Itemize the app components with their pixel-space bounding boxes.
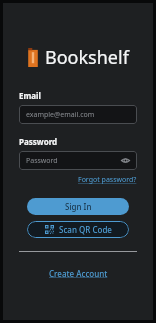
staticText: Password [26,156,58,166]
staticText: Password [19,136,58,147]
button[interactable]: Sign In [27,198,129,215]
staticText: example@email.com [26,110,95,120]
button[interactable]: example@email.com [19,105,137,124]
button[interactable]: Show password [121,156,130,165]
staticText: Sign In [65,201,92,212]
staticText: Forgot password? [78,175,137,185]
button[interactable]: Forgot password? [78,175,137,185]
staticText: Create Account [49,268,108,279]
button[interactable]: Create Account [49,268,108,279]
staticText: Scan QR Code [59,224,112,235]
staticText: Email [19,90,41,101]
button[interactable]: Scan QR Code [27,221,129,238]
button[interactable]: Password [19,151,137,170]
staticText: Bookshelf [45,45,129,70]
